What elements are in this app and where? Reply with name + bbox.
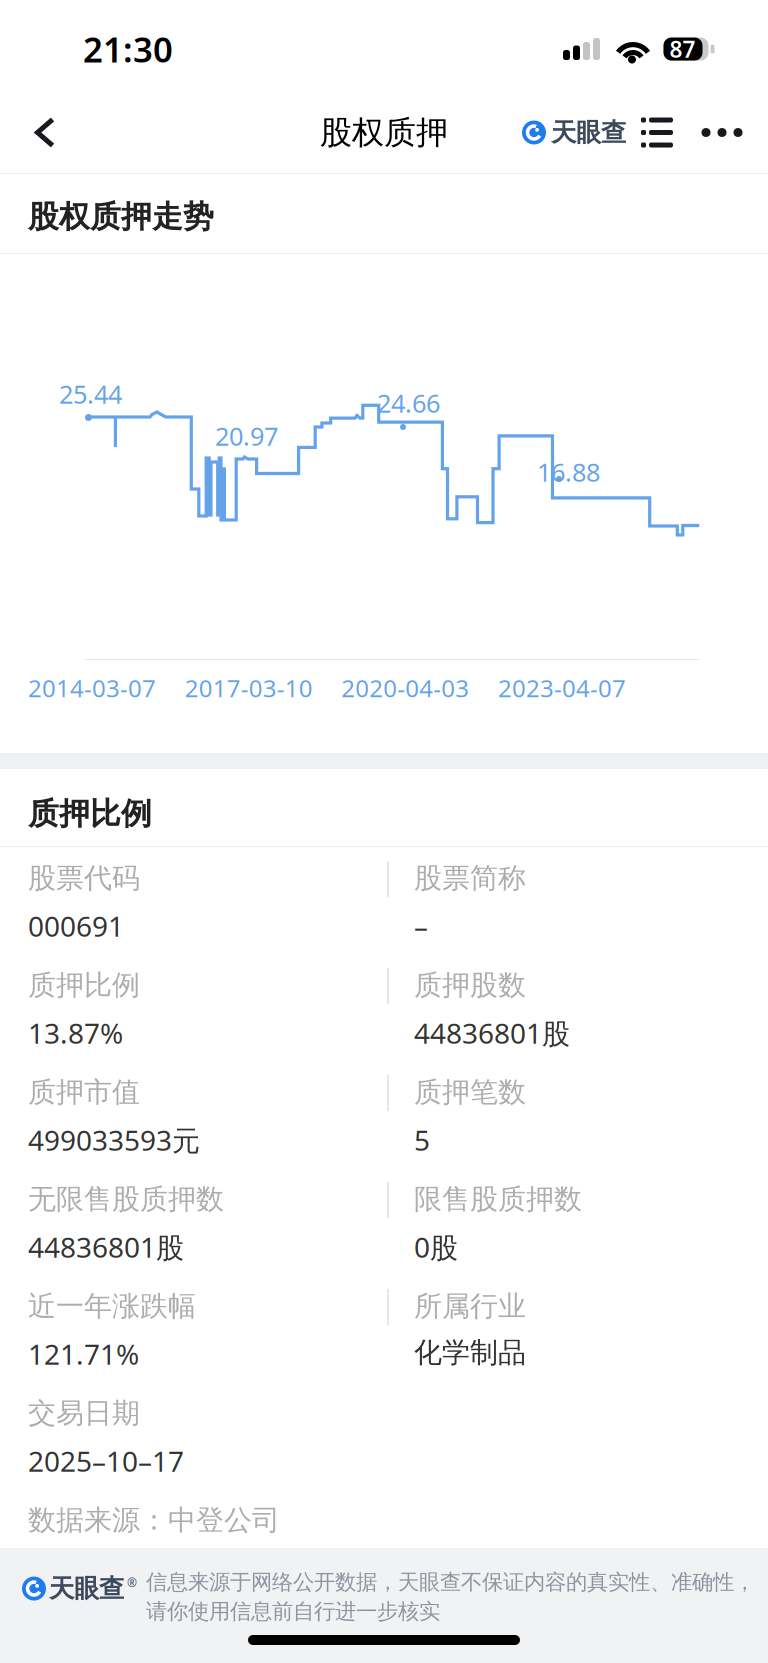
- staticText: 499033593元: [28, 1121, 200, 1159]
- staticText: 请你使用信息前自行进一步核实: [146, 1598, 440, 1624]
- staticText: 121.71%: [28, 1335, 139, 1373]
- staticText: 天眼查: [551, 117, 626, 148]
- staticText: 近一年涨跌幅: [28, 1289, 196, 1323]
- staticText: 13.87%: [28, 1014, 123, 1052]
- button[interactable]: 返回: [0, 92, 90, 173]
- staticText: 质押股数: [414, 968, 526, 1002]
- staticText: 16.88: [537, 455, 600, 489]
- staticText: 000691: [28, 907, 124, 945]
- staticText: 44836801股: [414, 1014, 570, 1052]
- staticText: 2020-04-03: [341, 672, 469, 704]
- staticText: 20.97: [215, 419, 278, 453]
- staticText: 2023-04-07: [498, 672, 626, 704]
- staticText: 化学制品: [414, 1335, 526, 1370]
- staticText: 股权质押: [320, 113, 448, 152]
- staticText: 天眼查: [49, 1573, 124, 1604]
- staticText: 44836801股: [28, 1228, 184, 1266]
- staticText: 2017-03-10: [185, 672, 313, 704]
- staticText: 数据来源：中登公司: [28, 1503, 280, 1537]
- staticText: 21:30: [83, 26, 173, 72]
- staticText: 25.44: [59, 377, 122, 411]
- staticText: 交易日期: [28, 1396, 140, 1430]
- staticText: 质押比例: [28, 795, 152, 833]
- staticText: 所属行业: [414, 1289, 526, 1323]
- staticText: 股票简称: [414, 861, 526, 895]
- button[interactable]: 目录: [630, 92, 684, 173]
- staticText: 2014-03-07: [28, 672, 156, 704]
- staticText: 股权质押走势: [28, 198, 214, 236]
- staticText: 无限售股质押数: [28, 1182, 224, 1216]
- staticText: 2025–10–17: [28, 1442, 184, 1480]
- staticText: 质押比例: [28, 968, 140, 1002]
- staticText: 质押市值: [28, 1075, 140, 1109]
- staticText: 24.66: [377, 386, 440, 420]
- staticText: 质押笔数: [414, 1075, 526, 1109]
- staticText: 限售股质押数: [414, 1182, 582, 1216]
- staticText: 股票代码: [28, 861, 140, 895]
- button[interactable]: 天眼查: [518, 92, 630, 173]
- button[interactable]: 更多: [684, 92, 760, 173]
- staticText: 5: [414, 1121, 430, 1159]
- staticText: 信息来源于网络公开数据，天眼查不保证内容的真实性、准确性，: [146, 1569, 755, 1595]
- staticText: ®: [127, 1575, 137, 1590]
- staticText: 87: [669, 34, 695, 64]
- staticText: –: [414, 907, 428, 945]
- staticText: 0股: [414, 1228, 458, 1266]
